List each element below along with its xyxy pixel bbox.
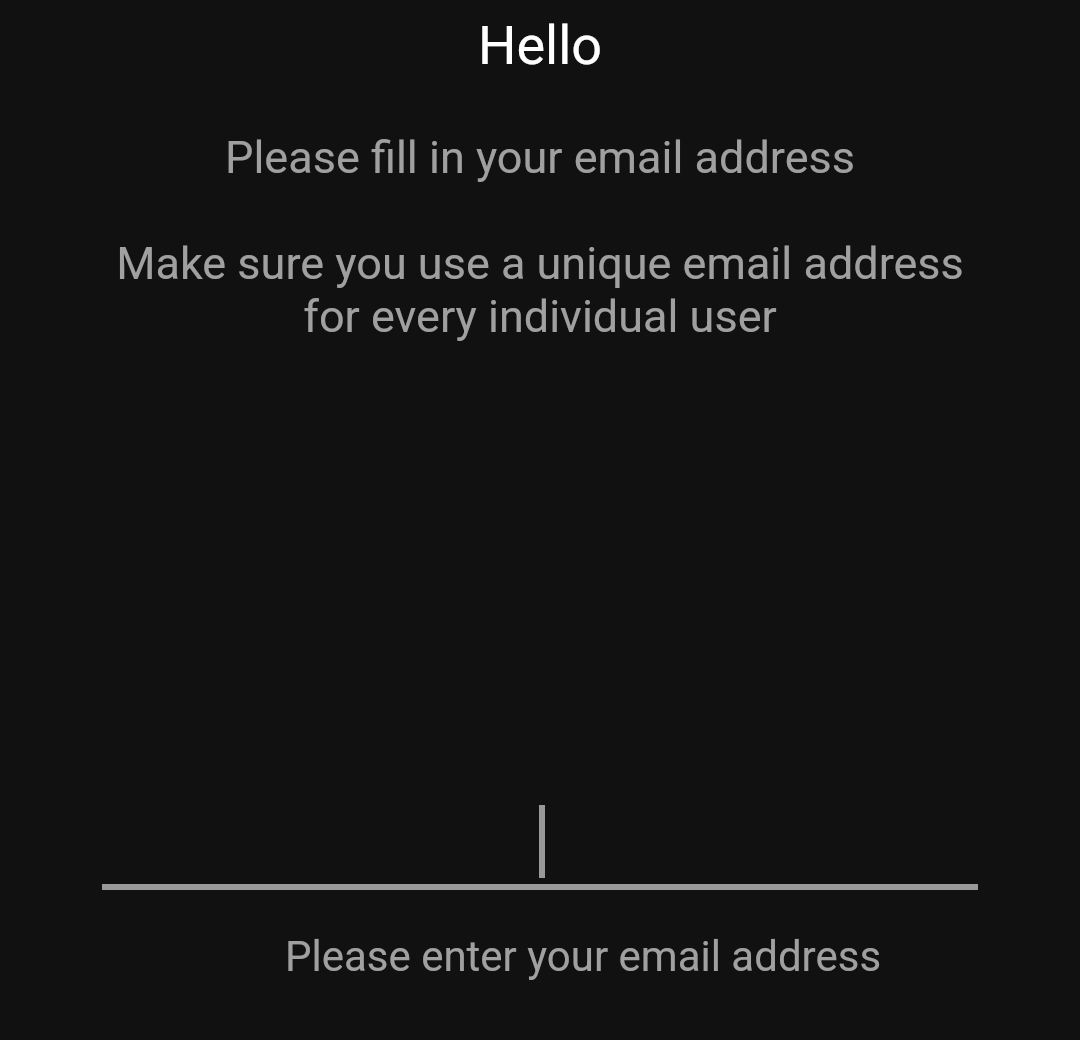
staticText: Make sure you use a unique email address… xyxy=(100,237,980,343)
staticText: Please enter your email address xyxy=(43,932,1080,981)
staticText: Please fill in your email address xyxy=(0,131,1080,184)
staticText: Hello xyxy=(0,14,1080,77)
button[interactable]: Email address input field xyxy=(0,760,1080,900)
